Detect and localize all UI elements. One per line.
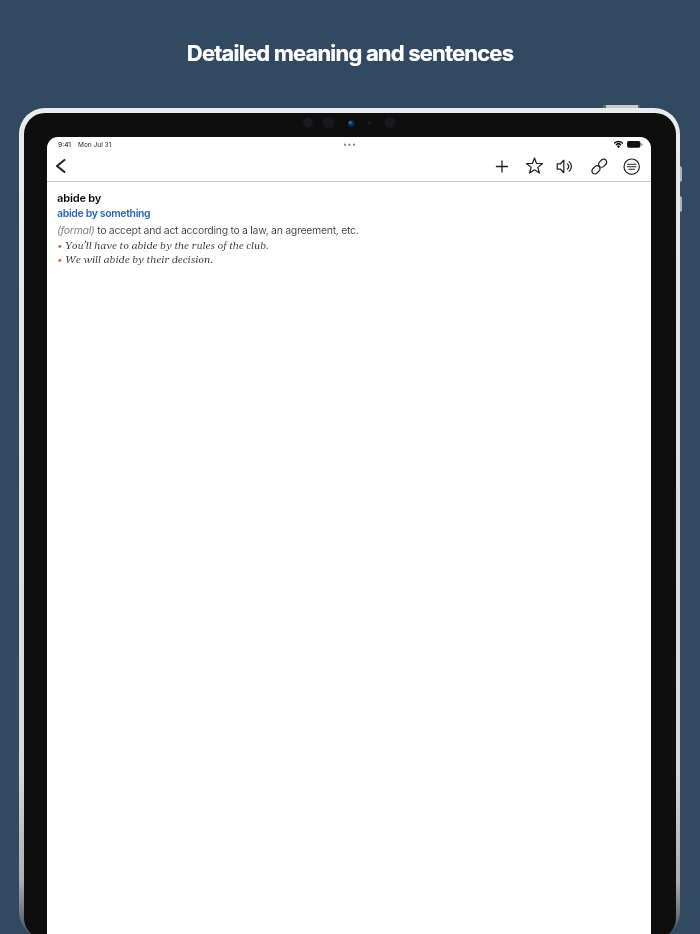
staticText: • You'll have to abide by the rules of t… [57,239,269,253]
staticText: Detailed meaning and sentences [0,40,700,67]
button[interactable]: abide by something [57,207,151,220]
staticText: • We will abide by their decision. [57,253,214,267]
button[interactable] [486,150,518,182]
button[interactable] [518,150,550,182]
staticText: (formal) to accept and act according to … [57,224,359,237]
button[interactable] [49,151,75,179]
staticText: 9:41 [58,141,72,149]
button[interactable] [550,150,582,182]
staticText: Mon Jul 31 [78,141,112,149]
button[interactable] [615,150,647,182]
staticText: abide by [57,191,102,204]
button[interactable] [583,150,615,182]
